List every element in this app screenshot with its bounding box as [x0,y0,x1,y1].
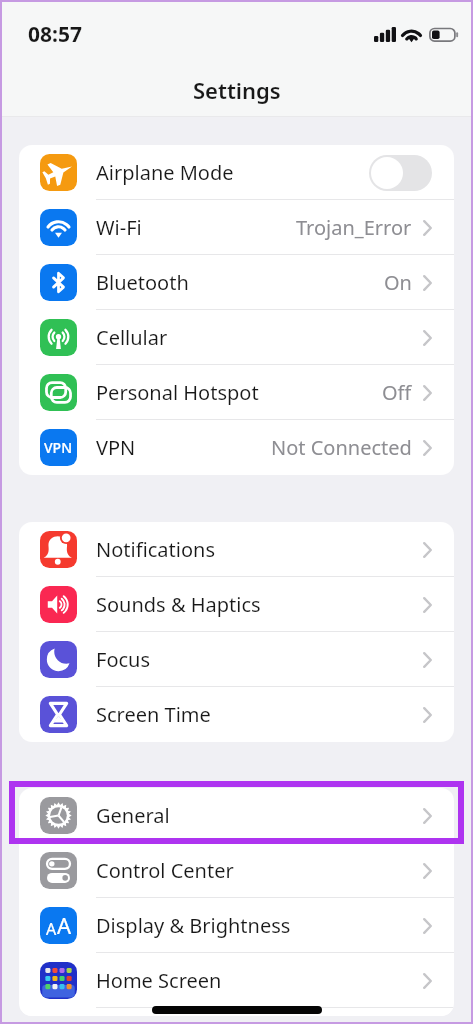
staticText: Personal Hotspot [96,379,259,406]
button[interactable]: Screen Time [19,687,454,742]
button[interactable]: Cellular [19,310,454,365]
button[interactable]: Sounds & Haptics [19,577,454,632]
staticText: A [57,910,72,940]
button[interactable]: General [19,788,454,843]
staticText: Cellular [96,324,168,351]
staticText: Trojan_Error [296,214,412,241]
button[interactable]: Wi-Fi [19,200,454,255]
staticText: Sounds & Haptics [96,591,261,618]
button[interactable]: Personal Hotspot [19,365,454,420]
staticText: Focus [96,646,151,673]
button[interactable]: Notifications [19,522,454,577]
staticText: VPN [44,438,73,457]
button[interactable]: Bluetooth [19,255,454,310]
staticText: Control Center [96,857,234,884]
staticText: A [46,918,57,940]
staticText: Notifications [96,536,215,563]
staticText: Screen Time [96,701,211,728]
staticText: Wi-Fi [96,214,142,241]
button[interactable]: VPN [19,420,454,475]
button[interactable]: A [19,898,454,953]
staticText: Settings [193,75,281,105]
staticText: Off [382,379,412,406]
staticText: Bluetooth [96,269,189,296]
staticText: On [384,269,412,296]
staticText: Not Connected [271,434,412,461]
button[interactable]: Toggle Airplane Mode [369,155,432,191]
staticText: Home Screen [96,967,222,994]
button[interactable]: Home Screen [19,953,454,1008]
staticText: General [96,802,170,829]
staticText: 08:57 [28,20,82,49]
button[interactable]: Focus [19,632,454,687]
staticText: VPN [96,434,136,461]
button[interactable]: Control Center [19,843,454,898]
staticText: Display & Brightness [96,912,291,939]
button[interactable]: Airplane Mode [19,145,454,200]
staticText: Airplane Mode [96,159,234,186]
